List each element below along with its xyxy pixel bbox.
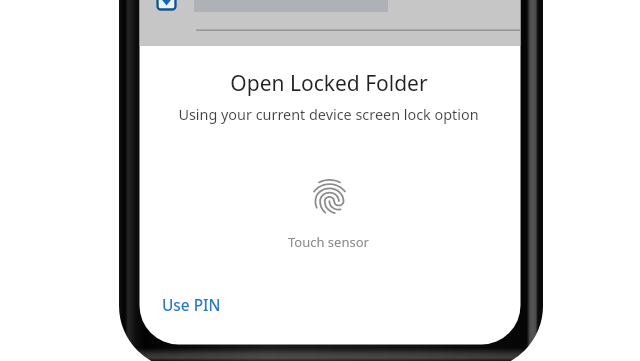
button[interactable]: Download	[152, 0, 181, 16]
button[interactable]: Use PIN	[154, 289, 229, 322]
staticText: Using your current device screen lock op…	[178, 105, 479, 125]
staticText: Touch sensor	[288, 233, 369, 251]
staticText: Use PIN	[162, 295, 221, 316]
staticText: Open Locked Folder	[230, 69, 428, 98]
